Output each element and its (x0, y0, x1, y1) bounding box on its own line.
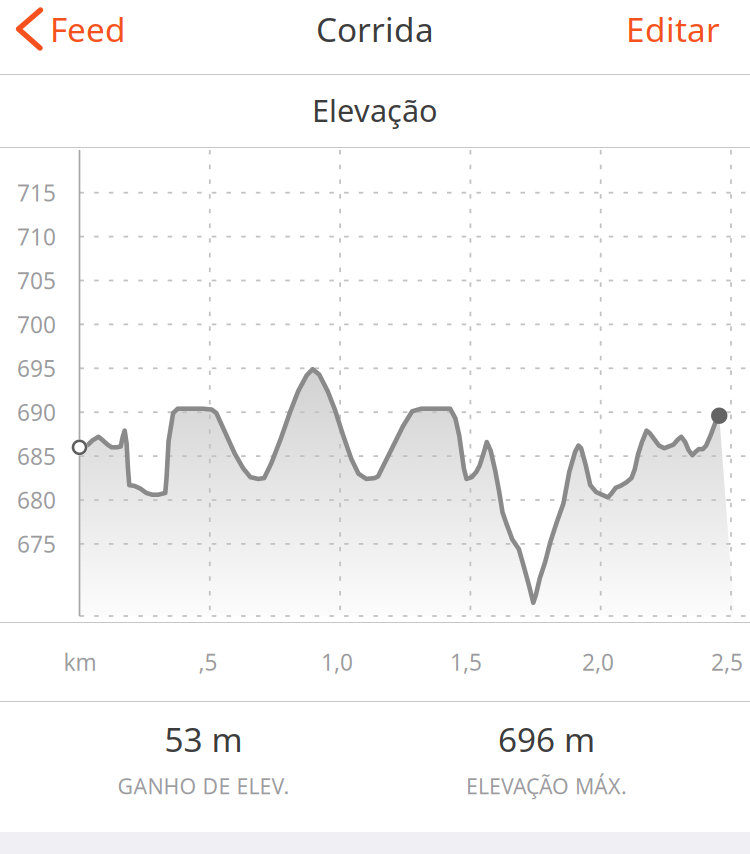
button[interactable]: Editar (0, 0, 200, 44)
staticText: ,5 (198, 647, 217, 677)
staticText: 695 (17, 353, 56, 383)
staticText: 685 (17, 441, 56, 471)
staticText: GANHO DE ELEV. (117, 772, 289, 800)
staticText: 2,5 (711, 647, 743, 677)
staticText: Feed (50, 7, 126, 51)
staticText: 53 m (164, 717, 242, 761)
staticText: 1,0 (321, 647, 353, 677)
staticText: 690 (17, 397, 56, 427)
button[interactable]: Feed (0, 0, 230, 44)
staticText: 675 (17, 529, 56, 559)
staticText: Editar (626, 7, 720, 51)
staticText: km (63, 647, 96, 677)
staticText: 710 (17, 221, 56, 252)
staticText: Elevação (312, 90, 438, 130)
staticText: ELEVAÇÃO MÁX. (466, 772, 627, 800)
staticText: 705 (17, 265, 56, 295)
staticText: 700 (17, 309, 56, 339)
staticText: 1,5 (450, 647, 482, 677)
staticText: 680 (17, 485, 56, 515)
staticText: 715 (17, 178, 56, 208)
staticText: 2,0 (582, 647, 614, 677)
staticText: Corrida (316, 7, 434, 51)
staticText: 696 m (498, 717, 595, 761)
